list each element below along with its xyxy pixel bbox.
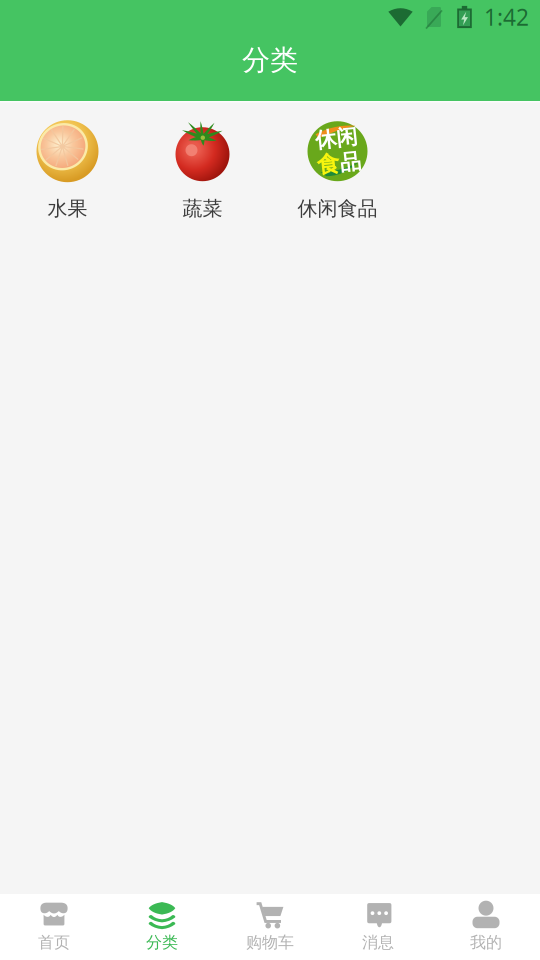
staticText: 休闲 (316, 125, 358, 151)
button[interactable]: 蔬菜 (135, 114, 270, 226)
staticText: 首页 (38, 933, 70, 952)
staticText: 休闲食品 (297, 196, 377, 221)
staticText: 水果 (47, 196, 87, 221)
staticText: 品 (338, 150, 359, 176)
staticText: 食 (315, 149, 338, 177)
button[interactable]: 休闲 (270, 114, 405, 226)
button[interactable]: 分类 (108, 894, 216, 960)
staticText: 分类 (146, 933, 178, 952)
staticText: 1:42 (484, 2, 529, 32)
button[interactable]: 首页 (0, 894, 108, 960)
staticText: 我的 (470, 933, 502, 952)
button[interactable]: 购物车 (216, 894, 324, 960)
staticText: 蔬菜 (182, 196, 222, 221)
staticText: 消息 (362, 933, 394, 952)
staticText: 购物车 (246, 933, 294, 952)
button[interactable]: 消息 (324, 894, 432, 960)
button[interactable]: 我的 (432, 894, 540, 960)
button[interactable]: 水果 (0, 114, 135, 226)
staticText: 分类 (242, 43, 298, 77)
